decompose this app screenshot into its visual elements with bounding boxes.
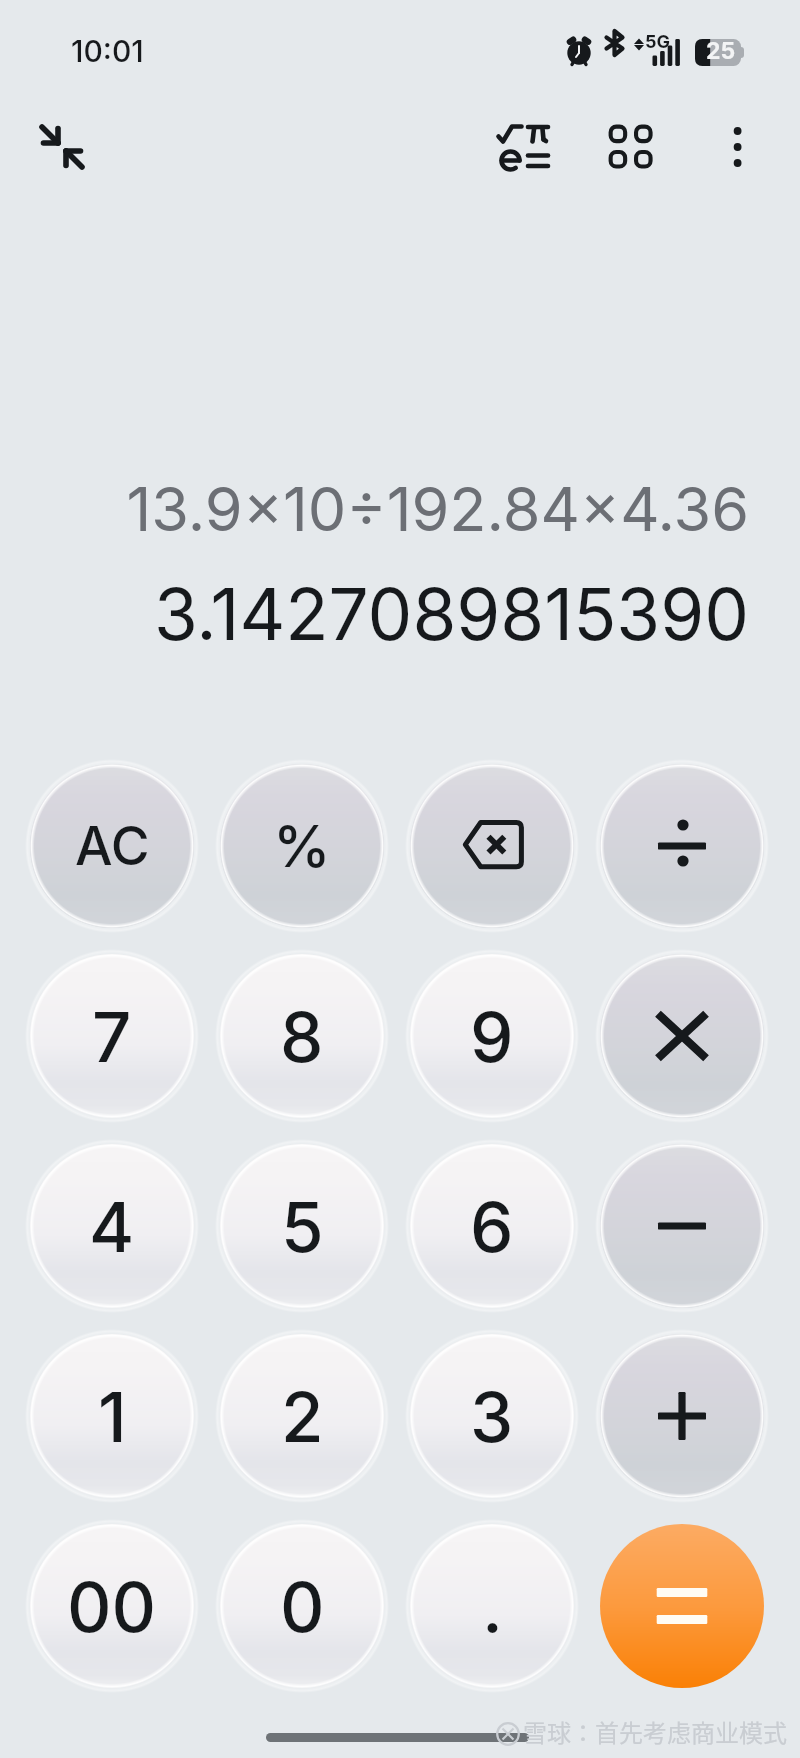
- button[interactable]: 7: [27, 951, 197, 1121]
- button[interactable]: 5: [217, 1141, 387, 1311]
- button[interactable]: More options: [702, 104, 778, 180]
- staticText: 3: [470, 1375, 514, 1458]
- staticText: 7: [92, 995, 132, 1078]
- button[interactable]: 2: [217, 1331, 387, 1501]
- button[interactable]: Divide: [597, 761, 767, 931]
- button[interactable]: History: [588, 104, 672, 188]
- button[interactable]: Equals: [597, 1521, 767, 1691]
- button[interactable]: Multiply: [597, 951, 767, 1121]
- button[interactable]: 0: [217, 1521, 387, 1691]
- staticText: 5G: [645, 31, 671, 53]
- button[interactable]: Plus: [597, 1331, 767, 1501]
- button[interactable]: 4: [27, 1141, 197, 1311]
- button[interactable]: Backspace: [407, 761, 577, 931]
- staticText: 2: [281, 1375, 324, 1458]
- staticText: 25: [706, 37, 736, 65]
- button[interactable]: 6: [407, 1141, 577, 1311]
- staticText: %: [273, 811, 331, 881]
- button[interactable]: 00: [27, 1521, 197, 1691]
- button[interactable]: 9: [407, 951, 577, 1121]
- button[interactable]: AC: [27, 761, 197, 931]
- staticText: 6: [470, 1185, 514, 1268]
- button[interactable]: Minus: [597, 1141, 767, 1311]
- button[interactable]: 1: [27, 1331, 197, 1501]
- staticText: 3.1427089815390: [153, 571, 749, 657]
- staticText: .: [482, 1565, 503, 1648]
- button[interactable]: Collapse: [20, 105, 104, 189]
- staticText: 8: [280, 995, 324, 1078]
- staticText: 10:01: [71, 33, 144, 69]
- staticText: 13.9×10÷192.84×4.36: [126, 472, 749, 546]
- button[interactable]: 8: [217, 951, 387, 1121]
- staticText: 5: [281, 1185, 324, 1268]
- button[interactable]: %: [217, 761, 387, 931]
- staticText: AC: [75, 814, 150, 878]
- staticText: 9: [470, 995, 514, 1078]
- staticText: 00: [67, 1565, 157, 1648]
- staticText: 1: [98, 1375, 127, 1458]
- staticText: 4: [89, 1185, 135, 1268]
- staticText: 雪球：首先考虑商业模式: [523, 1714, 787, 1749]
- button[interactable]: 3: [407, 1331, 577, 1501]
- button[interactable]: .: [407, 1521, 577, 1691]
- button[interactable]: Scientific mode: [478, 100, 568, 196]
- staticText: 0: [280, 1565, 325, 1648]
